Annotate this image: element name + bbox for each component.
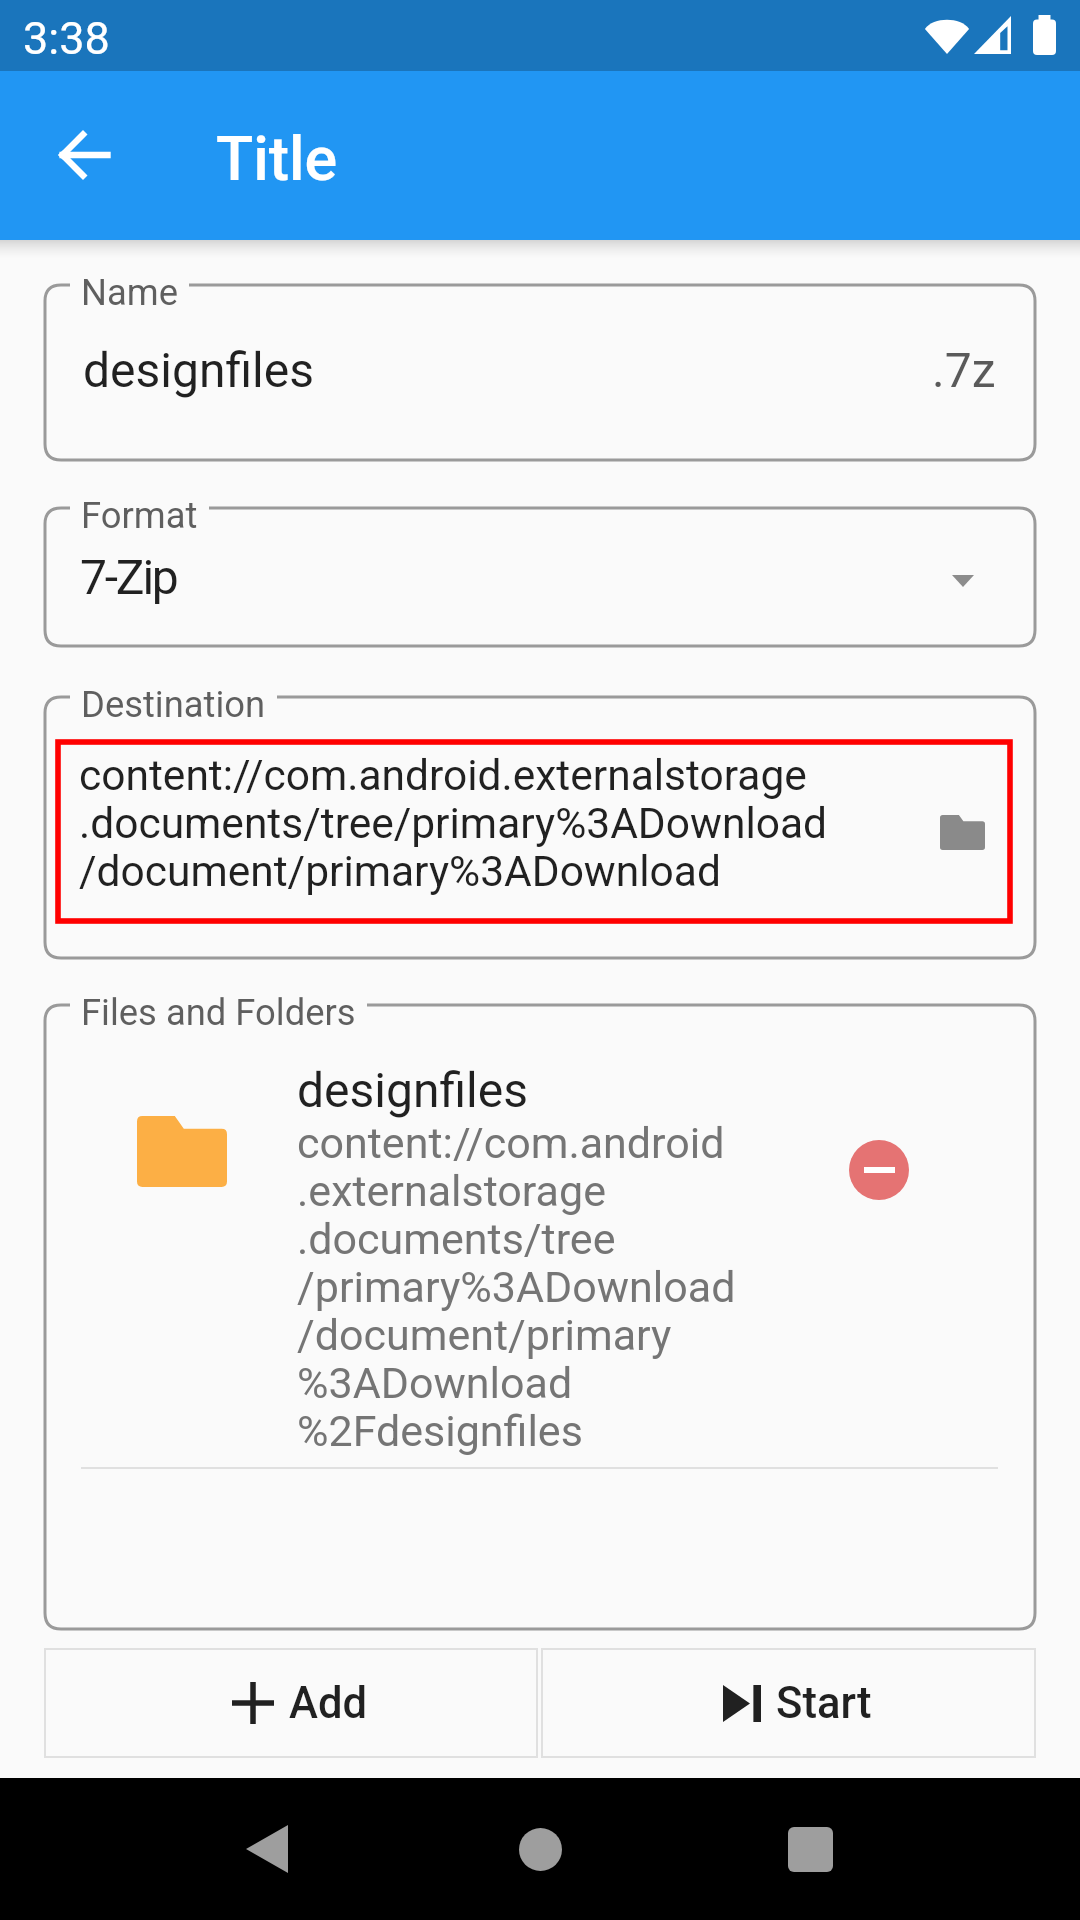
staticText: content://com.android .externalstorage .… [297,1118,736,1456]
staticText: Title [216,123,338,194]
staticText: 7-Zip [80,549,177,605]
button[interactable]: Navigate up [42,114,124,196]
button[interactable]: 7-Zip [45,508,1035,646]
button[interactable]: Choose destination folder [920,790,1004,874]
button[interactable]: Home [500,1809,580,1889]
button[interactable]: content://com.android.externalstorage .d… [45,697,1035,958]
button[interactable]: Add [45,1649,537,1757]
staticText: designfiles [83,342,314,398]
button[interactable]: designfiles [45,285,1035,460]
staticText: content://com.android.externalstorage .d… [79,751,828,896]
staticText: Name [81,271,178,314]
staticText: .7z [932,342,996,398]
button[interactable]: Start [542,1649,1035,1757]
button[interactable]: Remove [839,1130,919,1210]
staticText: Add [289,1678,368,1729]
staticText: Files and Folders [81,991,356,1034]
staticText: designfiles [297,1062,528,1118]
button[interactable]: Back [227,1809,307,1889]
staticText: Format [81,494,198,537]
staticText: Destination [81,683,266,726]
staticText: 3:38 [23,12,110,65]
staticText: Start [776,1678,872,1729]
button[interactable]: Recent apps [770,1809,850,1889]
button[interactable]: designfiles [81,1041,998,1467]
